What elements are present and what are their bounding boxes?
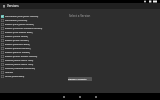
button[interactable]: Portuguese (Almeida) xyxy=(0,18,160,22)
staticText: Spanish (Sagradas Escrituras) xyxy=(5,67,35,70)
staticText: English (King James Version) xyxy=(5,23,34,26)
button[interactable]: Portuguese (King James Version) xyxy=(0,14,160,18)
staticText: English (Bible in English) xyxy=(5,51,30,54)
staticText: English (Douay Rheims Version) xyxy=(5,55,38,58)
button[interactable]: English (Websters Bible) xyxy=(0,42,160,46)
staticText: Versions xyxy=(7,4,19,8)
button[interactable]: English (Darby Version) xyxy=(0,38,160,42)
button[interactable]: Navigate up xyxy=(2,4,6,8)
staticText: Portuguese (King James Version) xyxy=(5,15,39,18)
staticText: Spanish (Reina Valera 1960) xyxy=(5,63,34,66)
staticText: English (New English Bible) xyxy=(5,31,33,34)
button[interactable]: English (New English Bible) xyxy=(0,30,160,34)
staticText: English (Websters Bible) xyxy=(5,43,30,46)
staticText: Select a Version xyxy=(69,14,91,18)
staticText: Hebrew xyxy=(5,71,13,74)
button[interactable]: English (Douay Rheims Version) xyxy=(0,54,160,58)
staticText: English (Darby Version) xyxy=(5,39,29,42)
button[interactable]: English (Bible in English) xyxy=(0,50,160,54)
staticText: English (Young Literal) xyxy=(5,35,28,38)
button[interactable]: Home xyxy=(78,95,82,99)
button[interactable]: Spanish (Sagradas Escrituras) xyxy=(0,66,160,70)
button[interactable]: Spanish (Reina Valera 1960) xyxy=(0,62,160,66)
staticText: English (American Standard Version) xyxy=(5,27,43,30)
button[interactable]: IMPORT A CUSTOM BIBLE FILE xyxy=(68,77,92,81)
button[interactable]: English (Revised Version) xyxy=(0,46,160,50)
staticText: English (Revised Version) xyxy=(5,47,31,50)
staticText: IMPORT A CUSTOM BIBLE FILE xyxy=(68,78,92,81)
button[interactable]: English (American Standard Version) xyxy=(0,26,160,30)
button[interactable]: Spanish (Reina Valera 1909) xyxy=(0,58,160,62)
staticText: Greek (Septuagint) xyxy=(5,75,25,78)
button[interactable]: Hebrew xyxy=(0,70,160,74)
button[interactable]: Recents xyxy=(94,95,98,99)
button[interactable]: English (King James Version) xyxy=(0,22,160,26)
staticText: Spanish (Reina Valera 1909) xyxy=(5,59,34,62)
button[interactable]: English (Young Literal) xyxy=(0,34,160,38)
staticText: Portuguese (Almeida) xyxy=(5,19,28,22)
button[interactable]: Back xyxy=(62,95,66,99)
button[interactable]: Greek (Septuagint) xyxy=(0,74,160,78)
